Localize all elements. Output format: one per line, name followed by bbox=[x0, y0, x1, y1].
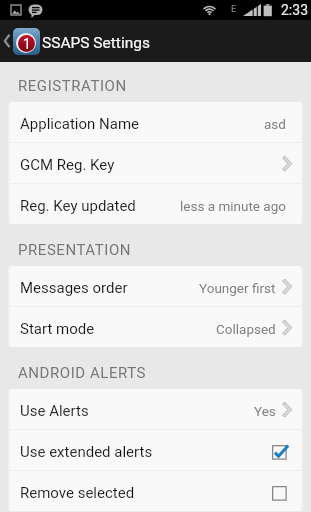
staticText: 2:33 bbox=[281, 2, 308, 18]
button[interactable]: Reg. Key updated bbox=[10, 184, 301, 224]
button[interactable]: Messages order bbox=[10, 266, 301, 306]
button[interactable]: Remove selected bbox=[10, 471, 301, 511]
staticText: SSAPS Settings bbox=[42, 34, 150, 52]
button[interactable]: Navigate up bbox=[0, 20, 311, 62]
button[interactable]: Start mode bbox=[10, 307, 301, 347]
button[interactable]: GCM Reg. Key bbox=[10, 143, 301, 183]
staticText: Application Name bbox=[20, 115, 140, 133]
staticText: Reg. Key updated bbox=[20, 197, 136, 215]
staticText: REGISTRATION bbox=[18, 77, 127, 95]
staticText: Collapsed bbox=[216, 321, 276, 337]
button[interactable]: Application Name bbox=[10, 102, 301, 142]
staticText: Use extended alerts bbox=[20, 443, 153, 461]
staticText: Messages order bbox=[20, 279, 128, 297]
button[interactable]: Use Alerts bbox=[10, 389, 301, 429]
staticText: Younger first bbox=[199, 280, 276, 296]
staticText: less a minute ago bbox=[180, 198, 286, 214]
staticText: E bbox=[231, 4, 237, 15]
staticText: Use Alerts bbox=[20, 402, 89, 420]
staticText: asd bbox=[264, 116, 286, 132]
staticText: Yes bbox=[254, 403, 276, 419]
staticText: Remove selected bbox=[20, 484, 135, 502]
button[interactable]: Use extended alerts bbox=[10, 430, 301, 470]
staticText: PRESENTATION bbox=[18, 241, 132, 259]
staticText: GCM Reg. Key bbox=[20, 156, 115, 174]
staticText: 1 bbox=[23, 36, 31, 52]
staticText: ANDROID ALERTS bbox=[18, 364, 147, 382]
staticText: Start mode bbox=[20, 320, 95, 338]
